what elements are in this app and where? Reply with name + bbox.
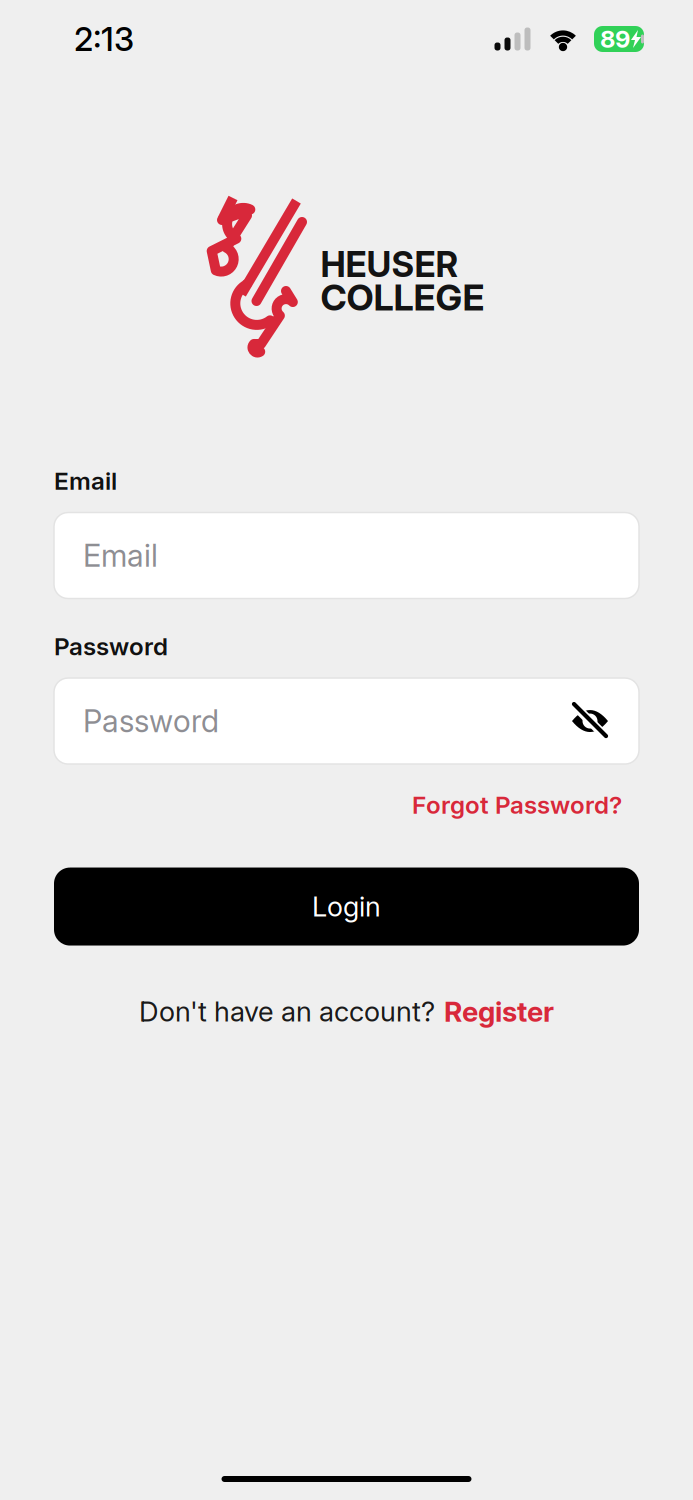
- staticText: Register: [444, 995, 554, 1028]
- button[interactable]: Forgot Password?: [54, 764, 639, 823]
- staticText: Password: [54, 631, 168, 661]
- staticText: Login: [312, 890, 381, 923]
- staticText: Don't have an account?: [139, 995, 435, 1028]
- staticText: Password: [83, 702, 219, 740]
- button[interactable]: Don't have an account?: [54, 995, 639, 1028]
- staticText: Email: [83, 537, 158, 574]
- staticText: Forgot Password?: [412, 790, 622, 819]
- staticText: 2:13: [74, 19, 134, 59]
- staticText: COLLEGE: [320, 276, 484, 319]
- staticText: 89: [600, 24, 630, 53]
- staticText: HEUSER: [320, 243, 458, 285]
- staticText: Email: [54, 466, 117, 495]
- button[interactable]: Login: [54, 868, 639, 946]
